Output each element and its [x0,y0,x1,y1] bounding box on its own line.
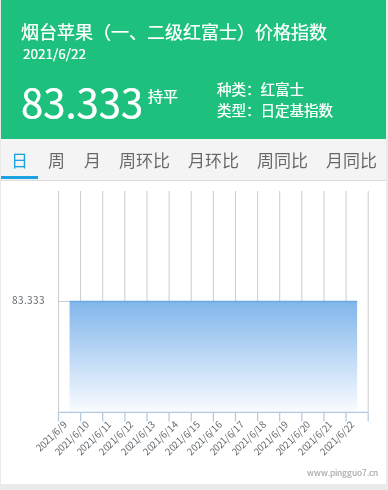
staticText: 2021/6/22 [23,43,87,63]
staticText: 月 [84,147,101,172]
button[interactable]: 月环比 [179,139,248,179]
staticText: 83.333 [21,72,144,130]
button[interactable]: 日 [1,139,38,179]
staticText: 周 [48,147,65,172]
staticText: 烟台苹果（一、二级红富士）价格指数 [21,18,327,44]
button[interactable]: 月 [74,139,110,179]
staticText: 日 [11,147,28,172]
button[interactable]: 周环比 [110,139,179,179]
staticText: 周环比 [119,147,170,172]
staticText: 类型：日定基指数 [217,99,333,120]
button[interactable]: 周 [38,139,74,179]
button[interactable]: 周同比 [248,139,317,179]
staticText: 持平 [148,85,179,107]
staticText: 种类：红富士 [217,78,304,99]
button[interactable]: 月同比 [317,139,386,179]
staticText: 月环比 [188,147,239,172]
staticText: 周同比 [257,147,308,172]
staticText: 月同比 [326,147,377,172]
